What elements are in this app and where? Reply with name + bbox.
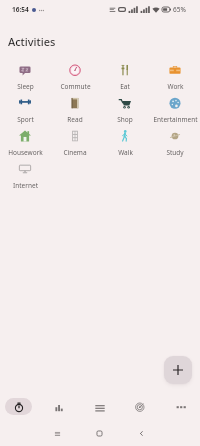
button[interactable]: Sleep [0,63,50,96]
button[interactable]: Eat [100,63,150,96]
staticText: Cinema [63,148,87,157]
button[interactable]: Records [87,396,113,417]
staticText: Eat [120,82,130,91]
staticText: Internet [13,181,38,190]
button[interactable]: Internet [0,162,50,195]
staticText: Shop [117,115,133,124]
button[interactable]: More [168,396,194,417]
staticText: 16:54 [12,5,29,14]
button[interactable]: Entertainment [150,96,200,129]
staticText: Study [166,148,184,157]
button[interactable]: Back [130,422,152,444]
button[interactable]: Sport [0,96,50,129]
staticText: Read [67,115,83,124]
button[interactable]: Recents [46,422,68,444]
staticText: Entertainment [153,115,198,124]
button[interactable]: Timer [5,398,32,415]
button[interactable]: Study [150,129,200,162]
button[interactable]: Commute [50,63,100,96]
staticText: Walk [118,148,133,157]
button[interactable]: Goals [127,396,153,417]
button[interactable]: Add activity [164,356,192,384]
button[interactable]: Housework [0,129,50,162]
button[interactable]: Shop [100,96,150,129]
staticText: Sleep [17,82,34,91]
staticText: Activities [8,34,56,49]
staticText: Commute [60,82,91,91]
staticText: Sport [17,115,34,124]
button[interactable]: Statistics [46,396,72,417]
button[interactable]: Home [88,422,110,444]
button[interactable]: Read [50,96,100,129]
button[interactable]: Work [150,63,200,96]
staticText: 65% [173,5,186,14]
staticText: Housework [8,148,43,157]
button[interactable]: Cinema [50,129,100,162]
staticText: Work [167,82,184,91]
button[interactable]: Walk [100,129,150,162]
